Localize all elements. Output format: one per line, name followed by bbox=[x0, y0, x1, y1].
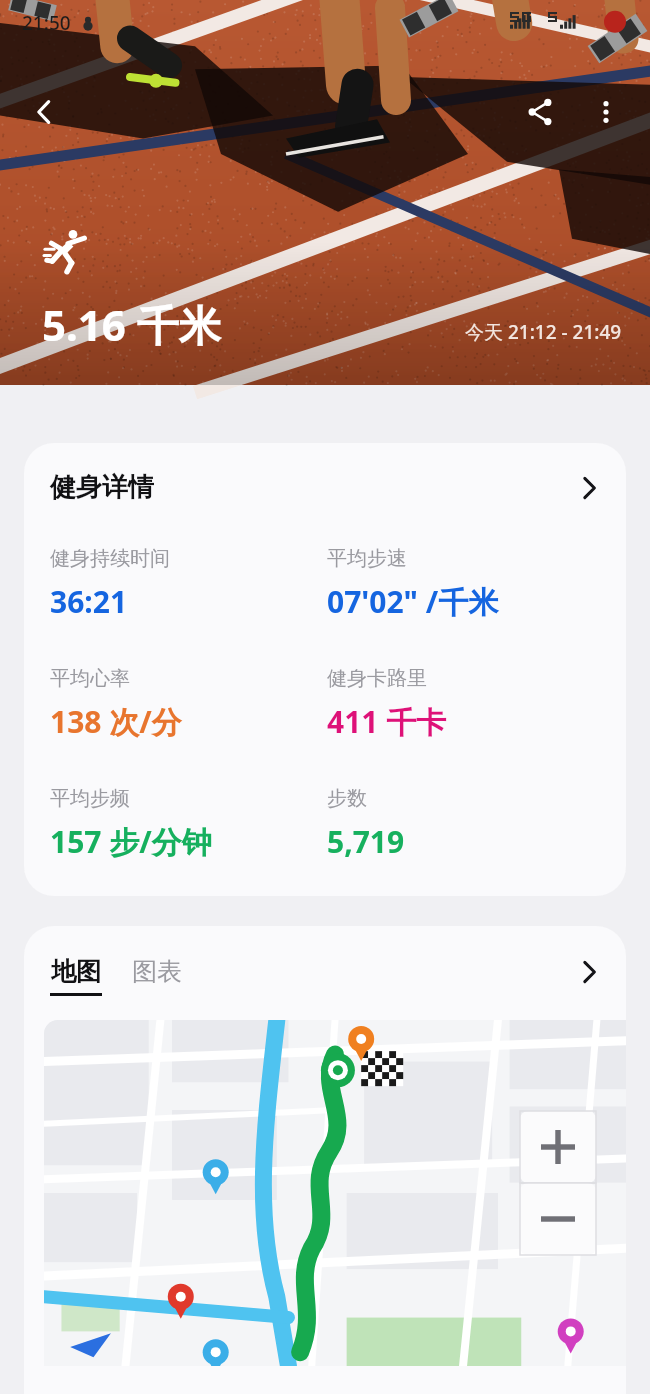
staticText: 平均步频 bbox=[50, 786, 130, 811]
button[interactable]: Open map bbox=[574, 957, 604, 987]
staticText: 411 千卡 bbox=[327, 701, 447, 742]
staticText: 21:50 bbox=[22, 10, 71, 36]
staticText: 平均步速 bbox=[327, 546, 407, 571]
staticText: 图表 bbox=[132, 956, 182, 987]
button[interactable]: Share bbox=[514, 86, 566, 138]
staticText: 07'02" /千米 bbox=[327, 581, 499, 622]
staticText: 36:21 bbox=[50, 581, 128, 622]
staticText: 平均心率 bbox=[50, 666, 130, 691]
button[interactable]: 健身详情 bbox=[24, 443, 626, 896]
button[interactable]: 图表 bbox=[132, 956, 182, 987]
staticText: 健身卡路里 bbox=[327, 666, 427, 691]
staticText: 步数 bbox=[327, 786, 367, 811]
button[interactable]: 地图 bbox=[50, 956, 102, 996]
button[interactable]: Route map bbox=[44, 1020, 626, 1366]
button[interactable]: More options bbox=[580, 86, 632, 138]
staticText: 健身详情 bbox=[50, 471, 154, 504]
staticText: 地图 bbox=[51, 956, 101, 987]
staticText: 5.16 千米 bbox=[42, 296, 221, 353]
button[interactable]: Back bbox=[18, 86, 70, 138]
button[interactable]: Zoom in bbox=[520, 1111, 596, 1183]
staticText: 138 次/分 bbox=[50, 701, 182, 742]
staticText: 健身持续时间 bbox=[50, 546, 170, 571]
button[interactable]: Zoom out bbox=[520, 1183, 596, 1255]
staticText: 今天 21:12 - 21:49 bbox=[465, 319, 622, 345]
staticText: 157 步/分钟 bbox=[50, 821, 212, 862]
staticText: 5,719 bbox=[327, 821, 405, 862]
